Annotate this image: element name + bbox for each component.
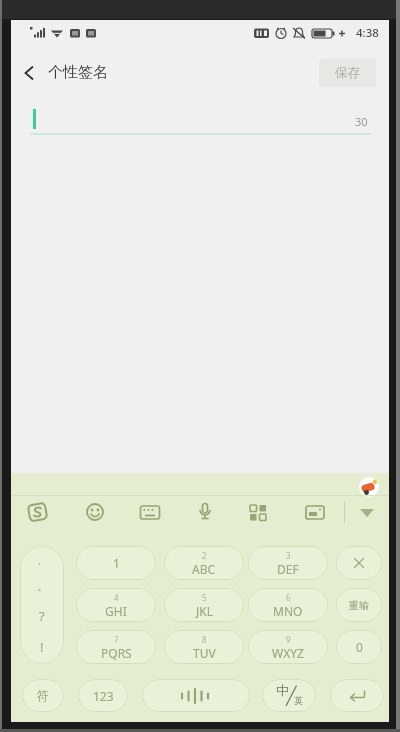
button[interactable]: 1	[76, 546, 156, 580]
staticText: 中	[276, 682, 289, 698]
button[interactable]	[17, 61, 41, 85]
staticText: 0	[356, 639, 363, 655]
button[interactable]: 8	[164, 630, 244, 664]
staticText: ABC	[192, 561, 216, 577]
button[interactable]: 30	[11, 95, 389, 141]
staticText: GHI	[105, 603, 127, 619]
staticText: 保存	[335, 65, 360, 81]
staticText: 个性签名	[48, 63, 108, 82]
button[interactable]	[359, 477, 379, 497]
staticText: 重输	[349, 599, 369, 612]
staticText: 1	[113, 555, 120, 571]
staticText: JKL	[196, 603, 213, 619]
button[interactable]	[142, 679, 250, 712]
button[interactable]: 4	[76, 588, 156, 622]
button[interactable]: 7	[76, 630, 156, 664]
staticText: 、	[37, 554, 47, 567]
staticText: 30	[355, 114, 368, 129]
button[interactable]	[137, 499, 163, 525]
button[interactable]: 6	[248, 588, 328, 622]
button[interactable]: 2	[164, 546, 244, 580]
staticText: DEF	[277, 561, 299, 577]
button[interactable]: 保存	[319, 59, 376, 87]
staticText: 4	[114, 592, 119, 603]
staticText: 符	[37, 688, 49, 703]
button[interactable]: 符	[22, 679, 64, 712]
staticText: 6	[286, 592, 291, 603]
staticText: 3	[286, 550, 291, 561]
staticText: 2	[202, 550, 207, 561]
staticText: WXYZ	[272, 645, 304, 661]
button[interactable]	[192, 499, 218, 525]
staticText: ?	[39, 607, 45, 625]
button[interactable]: 、	[20, 546, 64, 664]
staticText: 7	[114, 634, 119, 645]
button[interactable]: 重输	[336, 588, 382, 622]
button[interactable]	[82, 499, 108, 525]
staticText: 英	[294, 695, 303, 706]
staticText: 。	[37, 580, 47, 593]
button[interactable]: 123	[78, 679, 128, 712]
button[interactable]	[330, 679, 384, 712]
button[interactable]: 0	[336, 630, 382, 664]
button[interactable]	[302, 499, 328, 525]
button[interactable]	[25, 499, 51, 525]
staticText: !	[40, 638, 44, 656]
button[interactable]: 3	[248, 546, 328, 580]
button[interactable]	[336, 546, 382, 580]
staticText: MNO	[273, 603, 303, 619]
staticText: 4:38	[356, 25, 379, 41]
button[interactable]: 中	[262, 679, 316, 712]
staticText: 9	[286, 634, 291, 645]
button[interactable]: 9	[248, 630, 328, 664]
button[interactable]	[354, 501, 380, 525]
button[interactable]	[245, 499, 271, 525]
button[interactable]: 5	[164, 588, 244, 622]
staticText: 8	[202, 634, 207, 645]
staticText: 5	[202, 592, 207, 603]
staticText: PQRS	[101, 645, 132, 661]
staticText: TUV	[193, 645, 216, 661]
staticText: 123	[93, 688, 114, 704]
